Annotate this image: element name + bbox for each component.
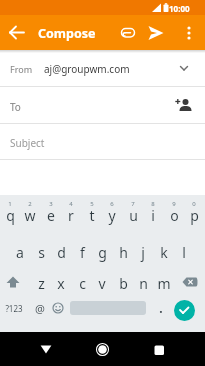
staticText: u <box>129 206 138 225</box>
button[interactable]: d <box>51 242 71 262</box>
staticText: q <box>6 206 15 225</box>
button[interactable] <box>178 21 202 45</box>
staticText: w <box>24 206 36 225</box>
button[interactable] <box>180 274 200 292</box>
staticText: 10:00 <box>169 3 190 14</box>
staticText: o <box>170 206 179 225</box>
staticText: To <box>10 100 21 114</box>
button[interactable]: p <box>184 205 204 225</box>
staticText: v <box>98 274 106 293</box>
staticText: aj@groupwm.com <box>44 62 130 76</box>
button[interactable]: 1 <box>4 199 16 209</box>
button[interactable] <box>147 337 171 361</box>
button[interactable]: v <box>92 273 112 293</box>
button[interactable]: g <box>92 242 112 262</box>
button[interactable]: n <box>133 273 153 293</box>
button[interactable]: o <box>164 205 184 225</box>
button[interactable]: To <box>0 87 205 123</box>
button[interactable] <box>5 20 30 45</box>
button[interactable]: a <box>10 242 30 262</box>
button[interactable] <box>50 300 66 316</box>
staticText: 5 <box>90 200 94 208</box>
staticText: From <box>10 63 33 75</box>
button[interactable] <box>3 274 23 292</box>
button[interactable] <box>174 300 195 321</box>
button[interactable]: 3 <box>45 199 57 209</box>
staticText: 7 <box>131 200 135 208</box>
button[interactable]: q <box>0 205 20 225</box>
staticText: t <box>89 206 95 225</box>
button[interactable]: s <box>31 242 51 262</box>
staticText: @ <box>35 301 45 316</box>
staticText: z <box>38 274 45 293</box>
staticText: y <box>108 206 116 225</box>
button[interactable]: z <box>31 273 51 293</box>
staticText: ?123 <box>5 303 23 314</box>
staticText: c <box>79 274 86 293</box>
button[interactable]: 7 <box>127 199 139 209</box>
staticText: Subject <box>10 136 45 150</box>
staticText: r <box>68 206 74 225</box>
button[interactable]: m <box>154 273 174 293</box>
staticText: d <box>57 243 66 262</box>
staticText: 1 <box>8 200 12 208</box>
button[interactable]: f <box>72 242 92 262</box>
button[interactable]: y <box>102 205 122 225</box>
staticText: n <box>139 274 148 293</box>
staticText: e <box>47 206 55 225</box>
staticText: 0 <box>192 200 196 208</box>
staticText: 8 <box>151 200 155 208</box>
staticText: b <box>119 274 128 293</box>
button[interactable]: 6 <box>106 199 118 209</box>
staticText: p <box>190 206 199 225</box>
staticText: i <box>151 206 155 225</box>
staticText: 3 <box>49 200 53 208</box>
staticText: m <box>157 274 171 293</box>
staticText: g <box>98 243 107 262</box>
staticText: j <box>141 243 145 262</box>
staticText: 2 <box>28 200 32 208</box>
button[interactable]: 4 <box>65 199 77 209</box>
button[interactable]: Subject <box>0 124 205 160</box>
staticText: f <box>80 243 85 262</box>
button[interactable]: . <box>154 300 168 316</box>
staticText: k <box>160 243 168 262</box>
button[interactable]: ?123 <box>2 300 26 316</box>
button[interactable]: b <box>113 273 133 293</box>
button[interactable]: i <box>143 205 163 225</box>
button[interactable]: 0 <box>188 199 200 209</box>
button[interactable]: h <box>113 242 133 262</box>
button[interactable]: c <box>72 273 92 293</box>
button[interactable] <box>116 21 140 45</box>
button[interactable]: t <box>82 205 102 225</box>
button[interactable]: w <box>20 205 40 225</box>
button[interactable] <box>34 337 58 361</box>
button[interactable]: From <box>0 50 205 87</box>
button[interactable]: @ <box>32 300 48 316</box>
button[interactable]: j <box>133 242 153 262</box>
button[interactable]: l <box>174 242 194 262</box>
button[interactable]: 5 <box>86 199 98 209</box>
button[interactable]: 2 <box>24 199 36 209</box>
staticText: 6 <box>110 200 114 208</box>
staticText: s <box>38 243 45 262</box>
button[interactable]: u <box>123 205 143 225</box>
staticText: a <box>16 243 24 262</box>
staticText: 9 <box>172 200 176 208</box>
button[interactable]: x <box>51 273 71 293</box>
staticText: Compose <box>38 25 96 42</box>
staticText: . <box>159 300 163 316</box>
button[interactable]: k <box>154 242 174 262</box>
button[interactable]: e <box>41 205 61 225</box>
button[interactable]: 8 <box>147 199 159 209</box>
button[interactable]: r <box>61 205 81 225</box>
staticText: 4 <box>69 200 73 208</box>
staticText: h <box>119 243 128 262</box>
button[interactable] <box>144 21 168 45</box>
button[interactable]: 9 <box>168 199 180 209</box>
staticText: l <box>182 243 186 262</box>
button[interactable] <box>90 337 115 362</box>
staticText: x <box>57 274 65 293</box>
